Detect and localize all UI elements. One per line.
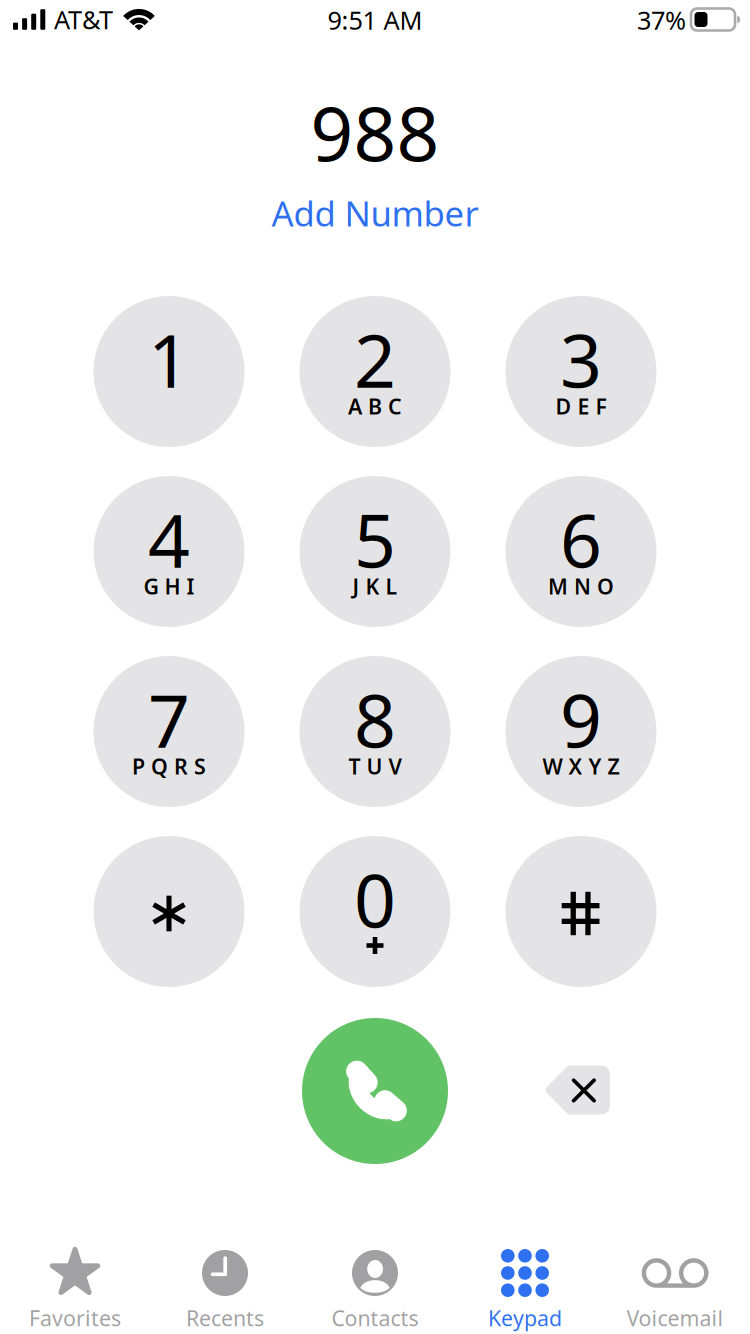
button[interactable]: Star	[93, 836, 244, 987]
staticText: 2	[354, 311, 396, 408]
staticText: 0	[354, 851, 396, 948]
staticText: Favorites	[29, 1304, 121, 1332]
button[interactable]: 5	[299, 476, 450, 627]
staticText: G H I	[143, 572, 194, 600]
button[interactable]: Delete	[544, 1065, 610, 1114]
staticText: Keypad	[488, 1304, 562, 1332]
button[interactable]: Pound	[505, 836, 656, 987]
staticText: 4	[148, 491, 190, 588]
staticText: Contacts	[331, 1304, 418, 1332]
staticText: M N O	[548, 572, 614, 600]
button[interactable]: 4	[93, 476, 244, 627]
staticText: 9:51 AM	[327, 3, 422, 37]
staticText: 9	[560, 671, 602, 768]
staticText: Voicemail	[626, 1304, 723, 1332]
button[interactable]: Recents	[150, 1240, 300, 1334]
staticText: A B C	[348, 392, 402, 420]
button[interactable]: Favorites	[0, 1240, 150, 1334]
button[interactable]: Contacts	[300, 1240, 450, 1334]
staticText: 1	[148, 311, 190, 408]
staticText: Recents	[186, 1304, 264, 1332]
staticText: P Q R S	[132, 752, 206, 780]
button[interactable]: Add Number	[255, 189, 495, 237]
staticText: 8	[354, 671, 396, 768]
button[interactable]: 7	[93, 656, 244, 807]
button[interactable]: 0	[299, 836, 450, 987]
button[interactable]: 9	[505, 656, 656, 807]
button[interactable]: Keypad	[450, 1240, 600, 1334]
staticText: Add Number	[271, 190, 478, 236]
button[interactable]: 6	[505, 476, 656, 627]
staticText: T U V	[348, 752, 401, 780]
button[interactable]: Voicemail	[600, 1240, 750, 1334]
staticText: 6	[560, 491, 602, 588]
staticText: 5	[354, 491, 396, 588]
staticText: 7	[148, 671, 190, 768]
button[interactable]: 8	[299, 656, 450, 807]
button[interactable]: Call	[302, 1018, 448, 1164]
button[interactable]: 1	[93, 296, 244, 447]
button[interactable]: 2	[299, 296, 450, 447]
staticText: J K L	[352, 572, 397, 600]
staticText: AT&T	[54, 2, 113, 36]
staticText: 988	[310, 82, 439, 182]
staticText: 3	[560, 311, 602, 408]
staticText: W X Y Z	[542, 752, 619, 780]
button[interactable]: 3	[505, 296, 656, 447]
staticText: D E F	[555, 392, 606, 420]
staticText: 37%	[637, 3, 686, 37]
